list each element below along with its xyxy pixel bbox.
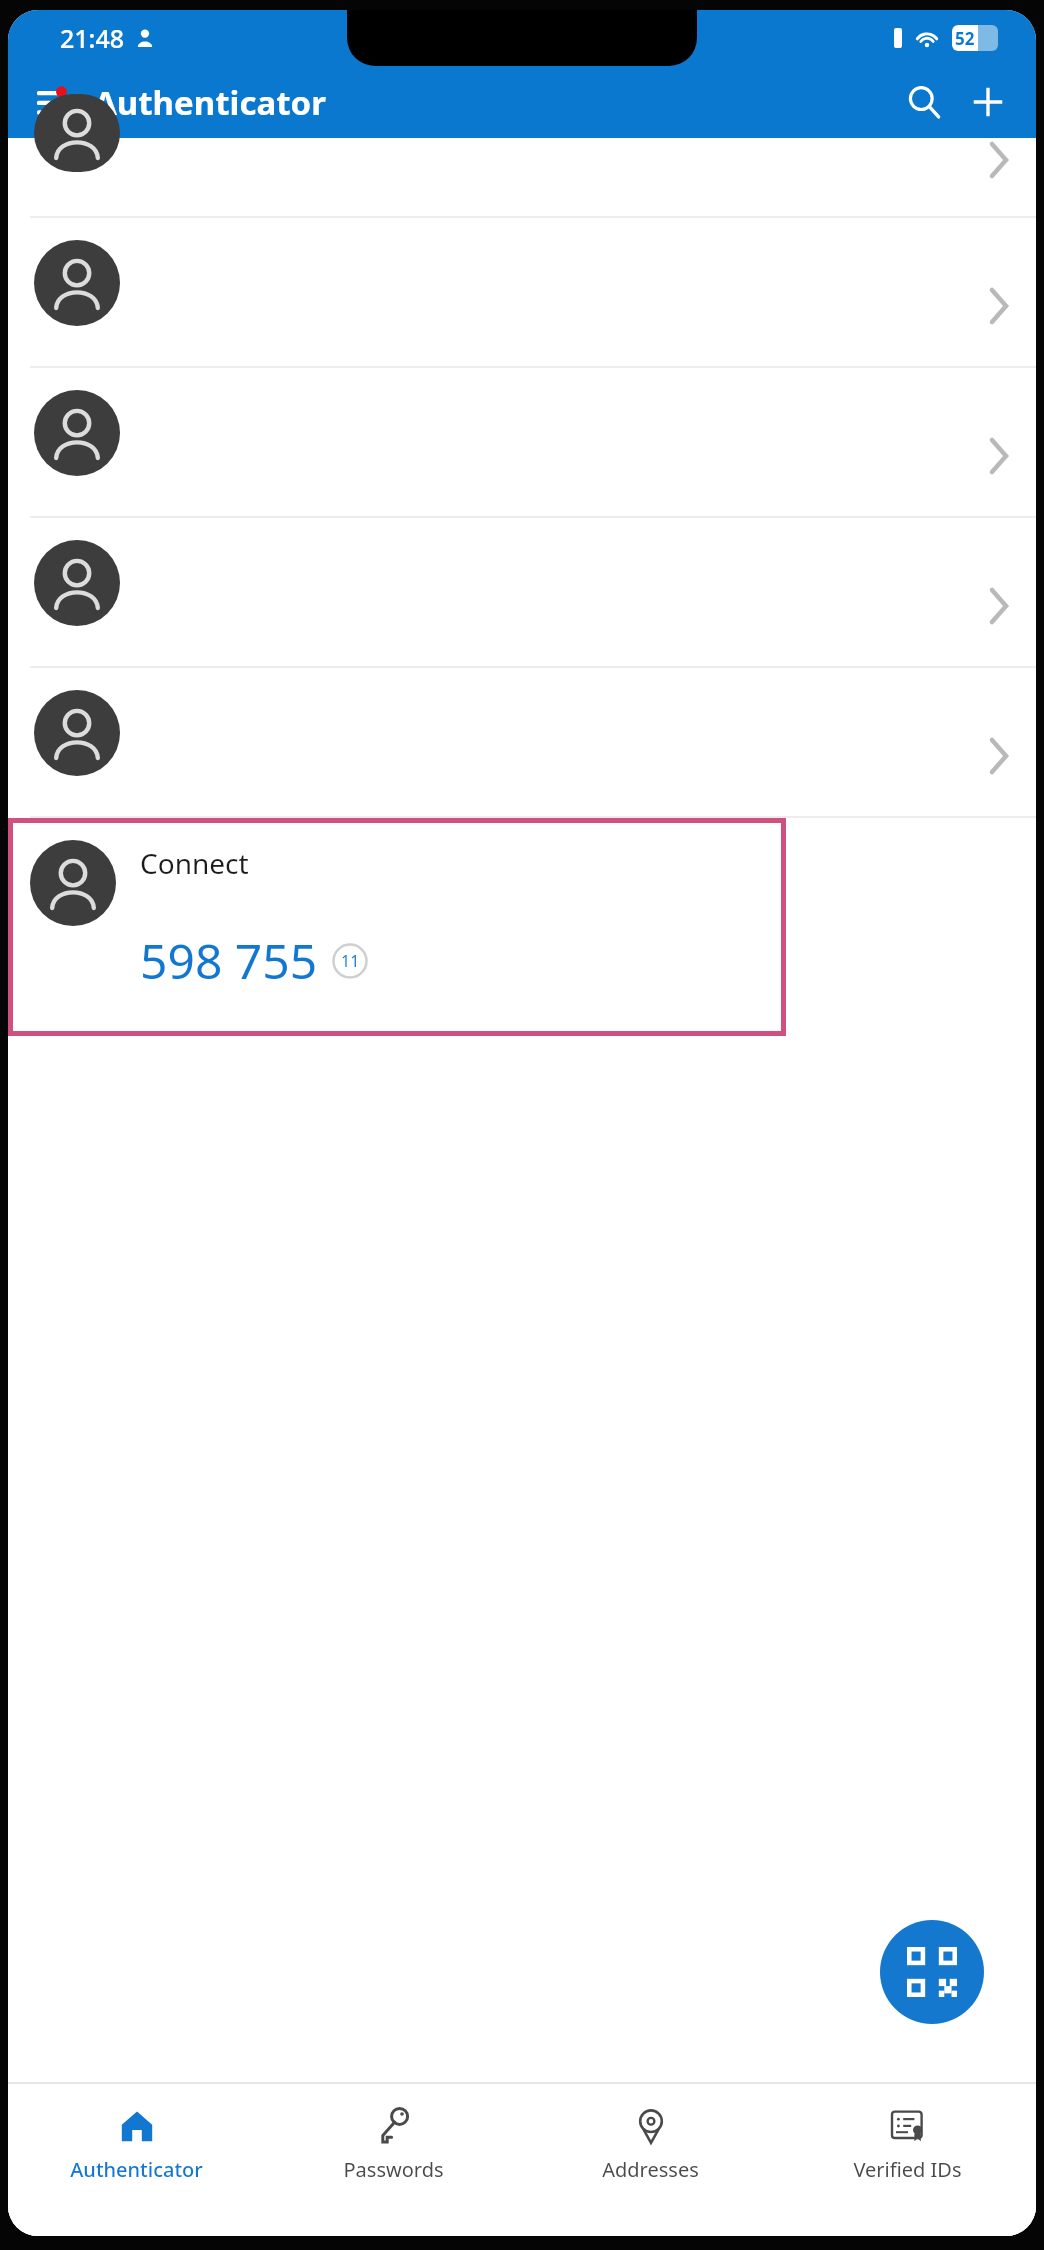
button[interactable]: Authenticator bbox=[8, 2084, 265, 2202]
button[interactable]: Scan QR code bbox=[880, 1920, 984, 2024]
staticText: 21:48 bbox=[60, 21, 125, 55]
staticText: Authenticator bbox=[70, 2156, 203, 2183]
button[interactable] bbox=[8, 368, 1036, 516]
staticText: Connect bbox=[140, 844, 249, 882]
button[interactable]: Verified IDs bbox=[779, 2084, 1036, 2202]
staticText: 598 755 bbox=[140, 928, 318, 993]
staticText: Addresses bbox=[602, 2156, 699, 2183]
staticText: 52 bbox=[955, 27, 975, 50]
button[interactable] bbox=[8, 218, 1036, 366]
staticText: Passwords bbox=[343, 2156, 444, 2183]
button[interactable]: Passwords bbox=[265, 2084, 522, 2202]
button[interactable]: Addresses bbox=[522, 2084, 779, 2202]
button[interactable]: Connect bbox=[8, 818, 786, 1036]
staticText: Authenticator bbox=[94, 80, 326, 125]
button[interactable]: Open navigation menu bbox=[28, 76, 80, 128]
staticText: 11 bbox=[341, 950, 360, 972]
button[interactable]: Search bbox=[896, 74, 952, 130]
button[interactable]: Add account bbox=[960, 74, 1016, 130]
button[interactable] bbox=[8, 518, 1036, 666]
staticText: Verified IDs bbox=[853, 2156, 962, 2183]
button[interactable] bbox=[8, 668, 1036, 816]
